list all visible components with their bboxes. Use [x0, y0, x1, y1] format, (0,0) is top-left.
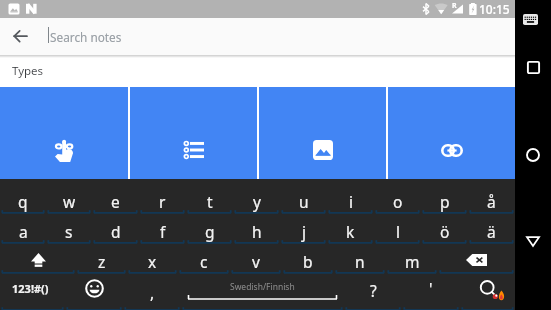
button[interactable]: b	[282, 243, 334, 273]
button[interactable]: p	[421, 183, 468, 213]
button[interactable]: Checklist note	[130, 87, 257, 179]
staticText: m	[405, 251, 420, 272]
button[interactable]: s	[46, 213, 92, 243]
staticText: ,	[150, 282, 155, 303]
staticText: j	[302, 221, 306, 242]
button[interactable]: Overview	[515, 43, 551, 92]
button[interactable]	[65, 273, 123, 310]
staticText: f	[160, 221, 166, 242]
button[interactable]: ä	[468, 213, 515, 243]
button[interactable]: m	[386, 243, 438, 273]
button[interactable]: q	[0, 183, 46, 213]
button[interactable]: o	[374, 183, 421, 213]
button[interactable]: Change keyboard	[512, 3, 548, 35]
button[interactable]: e	[92, 183, 139, 213]
staticText: v	[252, 251, 260, 272]
button[interactable]: ,	[123, 273, 181, 310]
button[interactable]: g	[186, 213, 233, 243]
staticText: w	[63, 191, 76, 212]
button[interactable]: c	[178, 243, 230, 273]
staticText: l	[396, 221, 400, 242]
staticText: Types	[12, 63, 44, 79]
staticText: s	[65, 221, 73, 242]
button[interactable]: j	[280, 213, 327, 243]
staticText: R	[452, 1, 457, 11]
button[interactable]: h	[233, 213, 280, 243]
button[interactable]: a	[0, 213, 46, 243]
staticText: Search notes	[50, 29, 122, 45]
button[interactable]: u	[280, 183, 327, 213]
button[interactable]: r	[139, 183, 186, 213]
staticText: ä	[487, 221, 496, 242]
staticText: o	[393, 191, 403, 212]
staticText: g	[205, 221, 215, 242]
staticText: ö	[440, 221, 450, 242]
staticText: x	[148, 251, 157, 272]
staticText: r	[159, 191, 166, 212]
button[interactable]	[0, 243, 76, 273]
staticText: i	[349, 191, 353, 212]
button[interactable]	[460, 273, 515, 310]
button[interactable]: n	[334, 243, 386, 273]
button[interactable]: l	[374, 213, 421, 243]
staticText: k	[346, 221, 355, 242]
button[interactable]: Space	[181, 273, 344, 310]
staticText: d	[111, 221, 121, 242]
staticText: h	[252, 221, 262, 242]
button[interactable]: k	[327, 213, 374, 243]
staticText: y	[253, 191, 261, 212]
button[interactable]: w	[46, 183, 92, 213]
staticText: t	[207, 191, 213, 212]
staticText: b	[303, 251, 313, 272]
staticText: q	[18, 191, 28, 212]
staticText: Swedish/Finnish	[230, 281, 295, 293]
staticText: a	[19, 221, 28, 242]
button[interactable]: f	[139, 213, 186, 243]
button[interactable]: ö	[421, 213, 468, 243]
button[interactable]: Image note	[259, 87, 386, 179]
button[interactable]: å	[468, 183, 515, 213]
button[interactable]: t	[186, 183, 233, 213]
button[interactable]: 123!#()	[0, 273, 65, 310]
button[interactable]	[438, 243, 515, 273]
button[interactable]: i	[327, 183, 374, 213]
staticText: '	[429, 278, 433, 299]
staticText: z	[98, 251, 106, 272]
staticText: e	[111, 191, 120, 212]
staticText: 10:15	[479, 1, 510, 17]
staticText: ?	[370, 280, 377, 301]
button[interactable]: y	[233, 183, 280, 213]
button[interactable]: Home	[515, 130, 551, 179]
button[interactable]: x	[127, 243, 178, 273]
button[interactable]: Link note	[388, 87, 515, 179]
staticText: å	[487, 191, 496, 212]
button[interactable]: Drawing note	[0, 87, 128, 179]
button[interactable]: '	[402, 273, 460, 310]
button[interactable]: z	[76, 243, 127, 273]
staticText: n	[355, 251, 365, 272]
button[interactable]: Navigate back	[0, 18, 41, 55]
staticText: p	[440, 191, 450, 212]
button[interactable]: v	[230, 243, 282, 273]
staticText: 123!#()	[12, 281, 49, 296]
button[interactable]: Hide keyboard	[515, 217, 551, 266]
staticText: c	[200, 251, 208, 272]
button[interactable]: ?	[344, 273, 402, 310]
button[interactable]: d	[92, 213, 139, 243]
staticText: u	[299, 191, 309, 212]
